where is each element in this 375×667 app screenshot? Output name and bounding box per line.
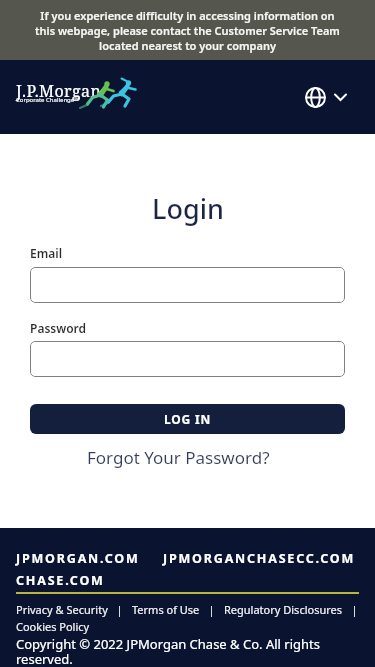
staticText: | bbox=[200, 602, 224, 617]
button[interactable]: CHASE.COM bbox=[16, 572, 105, 589]
staticText: LOG IN bbox=[164, 411, 211, 427]
staticText: J.P.Morgan bbox=[16, 80, 102, 102]
button[interactable] bbox=[30, 267, 345, 303]
button[interactable]: J.P.Morgan bbox=[16, 80, 102, 110]
staticText: If you experience difficulty in accessin… bbox=[35, 8, 340, 53]
button[interactable] bbox=[305, 87, 347, 108]
staticText: Copyright © 2022 JPMorgan Chase & Co. Al… bbox=[16, 635, 359, 667]
button[interactable]: Regulatory Disclosures bbox=[224, 602, 343, 617]
button[interactable]: Terms of Use bbox=[132, 602, 200, 617]
staticText: Email bbox=[30, 245, 63, 261]
button[interactable]: JPMORGAN.COM bbox=[16, 550, 140, 567]
staticText: Corporate Challenge℠ bbox=[16, 96, 80, 104]
button[interactable]: JPMORGANCHASECC.COM bbox=[163, 550, 356, 567]
button[interactable] bbox=[30, 341, 345, 377]
staticText: Forgot Your Password? bbox=[87, 446, 270, 469]
staticText: Login bbox=[152, 190, 224, 227]
button[interactable]: Privacy & Security bbox=[16, 602, 108, 617]
staticText: | bbox=[108, 602, 132, 617]
staticText: Password bbox=[30, 320, 87, 336]
button[interactable]: Cookies Policy bbox=[16, 619, 90, 634]
staticText: | bbox=[343, 602, 358, 617]
button[interactable]: Forgot Your Password? bbox=[21, 446, 336, 469]
button[interactable]: LOG IN bbox=[30, 404, 345, 434]
